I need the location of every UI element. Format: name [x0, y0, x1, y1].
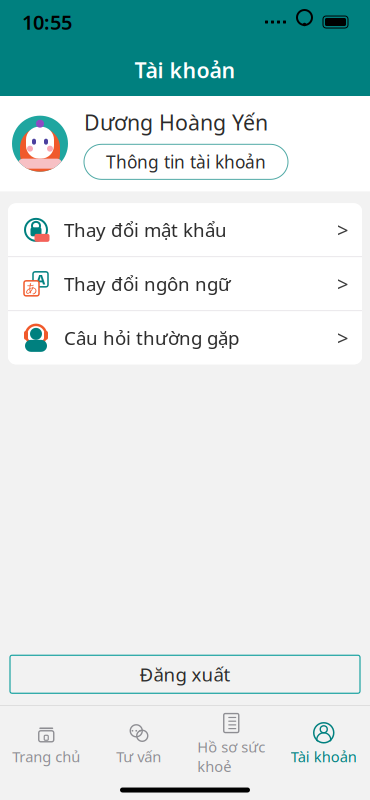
staticText: >: [337, 217, 348, 243]
staticText: Thay đổi ngôn ngữ: [64, 271, 231, 296]
staticText: >: [337, 325, 348, 351]
staticText: Thông tin tài khoản: [106, 150, 266, 173]
staticText: >: [337, 271, 348, 297]
button[interactable]: Thông tin tài khoản: [84, 144, 288, 179]
button[interactable]: Hồ sơ sức khoẻ: [185, 706, 277, 780]
staticText: Tư vấn: [116, 747, 161, 766]
button[interactable]: Thay đổi mật khẩu: [8, 203, 362, 256]
staticText: Thay đổi mật khẩu: [64, 217, 227, 242]
staticText: Tài khoản: [134, 56, 235, 84]
staticText: あ: [25, 281, 37, 296]
staticText: Đăng xuất: [139, 662, 230, 687]
button[interactable]: Trang chủ: [0, 716, 92, 770]
staticText: Hồ sơ sức khoẻ: [197, 737, 265, 776]
button[interactable]: A: [8, 257, 362, 310]
button[interactable]: Tài khoản: [277, 716, 370, 770]
button[interactable]: Tư vấn: [92, 716, 185, 770]
staticText: A: [36, 270, 45, 288]
staticText: Câu hỏi thường gặp: [64, 325, 239, 350]
staticText: Trang chủ: [12, 747, 80, 766]
staticText: 10:55: [22, 9, 72, 35]
staticText: Tài khoản: [291, 747, 357, 766]
staticText: Dương Hoàng Yến: [84, 108, 268, 136]
button[interactable]: Câu hỏi thường gặp: [8, 311, 362, 364]
button[interactable]: Đăng xuất: [10, 655, 360, 693]
